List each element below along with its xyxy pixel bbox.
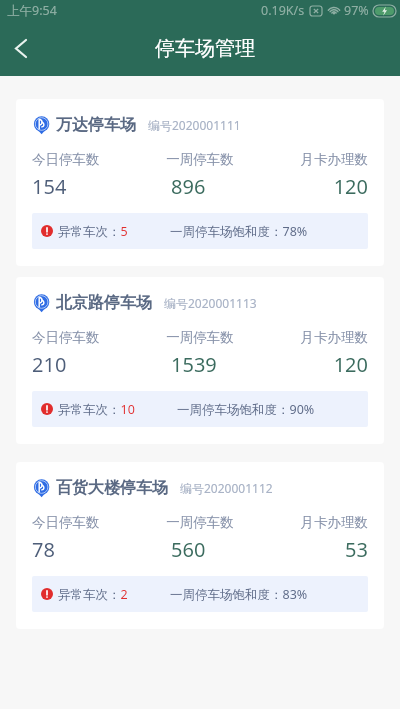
staticText: 月卡办理数 xyxy=(256,514,368,531)
staticText: 异常车次：2 xyxy=(58,586,128,603)
staticText: 一周停车场饱和度：90% xyxy=(177,401,315,418)
staticText: 97% xyxy=(344,2,369,19)
staticText: 今日停车数 xyxy=(32,514,144,531)
button[interactable]: Back xyxy=(0,27,42,69)
staticText: 1539 xyxy=(171,351,256,378)
staticText: 北京路停车场 xyxy=(56,293,152,313)
button[interactable]: 万达停车场 xyxy=(16,99,384,266)
staticText: 一周停车场饱和度：83% xyxy=(170,586,308,603)
staticText: 今日停车数 xyxy=(32,329,144,346)
staticText: 一周停车数 xyxy=(144,151,256,168)
staticText: 一周停车场饱和度：78% xyxy=(170,223,308,240)
staticText: 154 xyxy=(32,173,144,200)
staticText: 120 xyxy=(256,351,368,378)
staticText: 上午9:54 xyxy=(7,2,57,19)
staticText: 一周停车数 xyxy=(144,329,256,346)
staticText: 异常车次：10 xyxy=(58,401,135,418)
staticText: 210 xyxy=(32,351,144,378)
button[interactable]: 百货大楼停车场 xyxy=(16,462,384,629)
staticText: 一周停车数 xyxy=(144,514,256,531)
staticText: 编号2020001113 xyxy=(164,295,257,311)
staticText: 月卡办理数 xyxy=(256,329,368,346)
staticText: 万达停车场 xyxy=(56,115,136,135)
staticText: 78 xyxy=(32,536,144,563)
staticText: 异常车次：5 xyxy=(58,223,128,240)
staticText: 编号2020001112 xyxy=(180,480,273,496)
staticText: 百货大楼停车场 xyxy=(56,478,168,498)
staticText: 896 xyxy=(171,173,256,200)
staticText: 120 xyxy=(256,173,368,200)
staticText: 0.19K/s xyxy=(261,2,305,19)
staticText: 560 xyxy=(171,536,256,563)
staticText: 月卡办理数 xyxy=(256,151,368,168)
staticText: 停车场管理 xyxy=(155,36,255,61)
staticText: 53 xyxy=(256,536,368,563)
button[interactable]: 北京路停车场 xyxy=(16,277,384,444)
staticText: 编号2020001111 xyxy=(148,117,241,133)
staticText: 今日停车数 xyxy=(32,151,144,168)
